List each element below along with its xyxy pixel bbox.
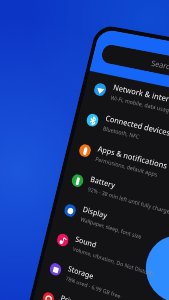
button[interactable]: Connected devices (74, 101, 169, 171)
staticText: Wi-Fi, mobile, data usage (110, 94, 169, 115)
staticText: 92% - 38 min left until fully charged (87, 185, 169, 217)
button[interactable]: Storage (38, 250, 169, 300)
button[interactable]: Battery (60, 161, 169, 236)
staticText: Connected devices (104, 113, 169, 139)
staticText: Permissions, default apps (95, 155, 159, 179)
staticText: Search settings (150, 58, 169, 78)
staticText: Network & internet (112, 82, 169, 108)
staticText: Volume, vibration, Do Not Disturb (72, 245, 154, 278)
staticText: Battery (89, 174, 117, 191)
staticText: Storage (67, 263, 95, 282)
staticText: Bluetooth, NFC (102, 124, 141, 141)
staticText: Display (82, 204, 109, 222)
staticText: 78% used - 6.99 GB free (65, 274, 122, 300)
staticText: Apps & notifications (97, 144, 169, 172)
staticText: Privacy (60, 293, 85, 300)
button[interactable]: Display (53, 191, 169, 268)
staticText: Sound (74, 234, 98, 251)
button[interactable]: Apps & notifications (67, 131, 169, 204)
staticText: Wallpaper, sleep, font size (80, 215, 143, 241)
button[interactable]: Search settings (100, 43, 169, 94)
button[interactable]: Network & internet (82, 71, 169, 138)
button[interactable]: Sound (45, 221, 169, 300)
button[interactable]: Privacy (31, 279, 169, 300)
